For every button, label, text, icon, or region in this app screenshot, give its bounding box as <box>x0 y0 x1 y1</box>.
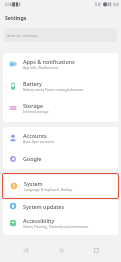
staticText: App info, Notifications <box>23 65 59 70</box>
staticText: Apps & notifications <box>23 58 75 65</box>
staticText: Settings <box>5 14 27 21</box>
button[interactable]: Search settings <box>4 28 117 42</box>
staticText: Battery <box>23 80 42 87</box>
staticText: Google <box>23 155 42 162</box>
button[interactable]: Accounts <box>3 127 118 148</box>
button[interactable]: Battery <box>3 75 118 97</box>
button[interactable]: System <box>4 175 117 197</box>
button[interactable]: Home <box>51 240 71 260</box>
button[interactable]: System updates <box>3 200 118 212</box>
staticText: System updates <box>23 203 65 210</box>
staticText: Language & keyboard, Backup <box>24 187 73 192</box>
button[interactable]: Storage <box>3 97 118 119</box>
staticText: Vision, Hearing, Dexterity and interacti… <box>23 224 89 229</box>
staticText: Search settings <box>7 32 38 38</box>
staticText: Auto-Sync accounts <box>23 139 55 144</box>
button[interactable]: Recents <box>86 240 106 260</box>
button[interactable]: Google <box>3 148 118 169</box>
button[interactable]: Accessibility <box>3 212 118 234</box>
staticText: Internal storage <box>23 109 49 114</box>
staticText: Storage <box>23 102 44 109</box>
button[interactable]: Apps & notifications <box>3 53 118 75</box>
staticText: Accessibility <box>23 217 55 224</box>
staticText: Battery saver, Power saving behaviour <box>23 87 84 92</box>
button[interactable]: Back <box>15 240 35 260</box>
staticText: Accounts <box>23 132 47 139</box>
staticText: System <box>24 180 43 187</box>
